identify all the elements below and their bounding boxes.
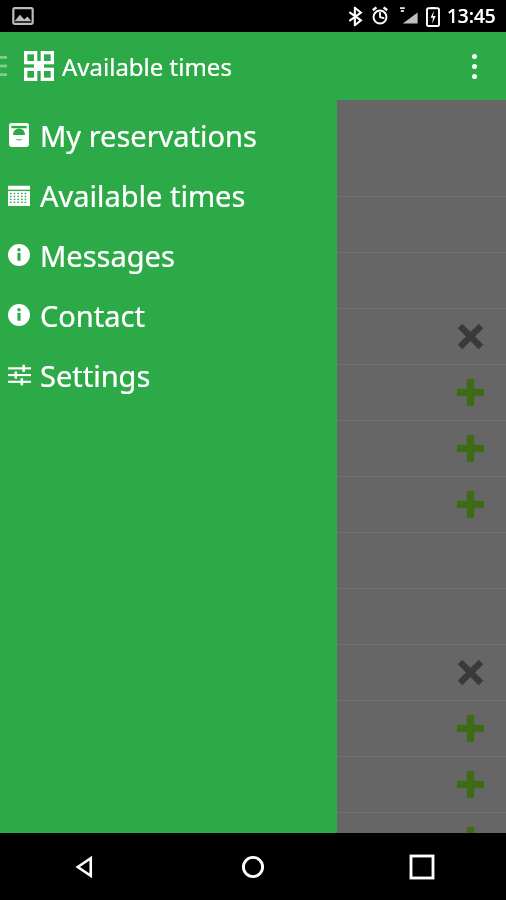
staticText: Messages <box>40 236 175 275</box>
button[interactable] <box>0 700 506 756</box>
staticText: Container 1 <box>144 135 254 162</box>
button[interactable] <box>0 644 506 700</box>
button[interactable]: Contact <box>0 285 337 345</box>
staticText: Available times <box>62 50 232 83</box>
button[interactable] <box>0 588 506 644</box>
staticText: Contact <box>40 296 145 335</box>
button[interactable]: App logo <box>24 51 54 81</box>
button[interactable]: Back <box>0 833 168 900</box>
staticText: Available times <box>40 176 246 215</box>
button[interactable]: Recent apps <box>337 833 506 900</box>
button[interactable] <box>0 364 506 420</box>
button[interactable] <box>0 532 506 588</box>
button[interactable]: Messages <box>0 225 337 285</box>
staticText: Settings <box>40 356 151 395</box>
button[interactable] <box>0 308 506 364</box>
button[interactable]: Settings <box>0 345 337 405</box>
button[interactable] <box>0 252 506 308</box>
button[interactable] <box>0 756 506 812</box>
button[interactable] <box>0 420 506 476</box>
button[interactable] <box>0 476 506 532</box>
button[interactable]: My reservations <box>0 105 337 165</box>
button[interactable] <box>0 196 506 252</box>
button[interactable]: Home <box>168 833 337 900</box>
button[interactable]: Available times <box>0 165 337 225</box>
button[interactable]: More options <box>450 42 498 90</box>
staticText: My reservations <box>40 116 257 155</box>
button[interactable] <box>0 812 506 868</box>
button[interactable]: Container 1 <box>130 120 296 176</box>
staticText: 13:45 <box>447 3 496 29</box>
